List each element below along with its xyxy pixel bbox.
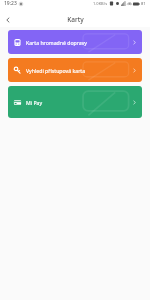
button[interactable]: Back [0, 12, 15, 27]
staticText: Karta hromadné dopravy [26, 39, 87, 46]
button[interactable]: Karta hromadné dopravy [8, 30, 142, 54]
staticText: 81 [141, 1, 146, 6]
staticText: Karty [67, 15, 84, 24]
staticText: Vyhledi přístupová karta [26, 67, 86, 74]
button[interactable]: Vyhledi přístupová karta [8, 58, 142, 82]
staticText: 1.0KB/s [93, 1, 108, 6]
staticText: 19:23 [4, 0, 17, 7]
staticText: Mi Pay [26, 99, 43, 106]
button[interactable]: Mi Pay [8, 86, 142, 118]
